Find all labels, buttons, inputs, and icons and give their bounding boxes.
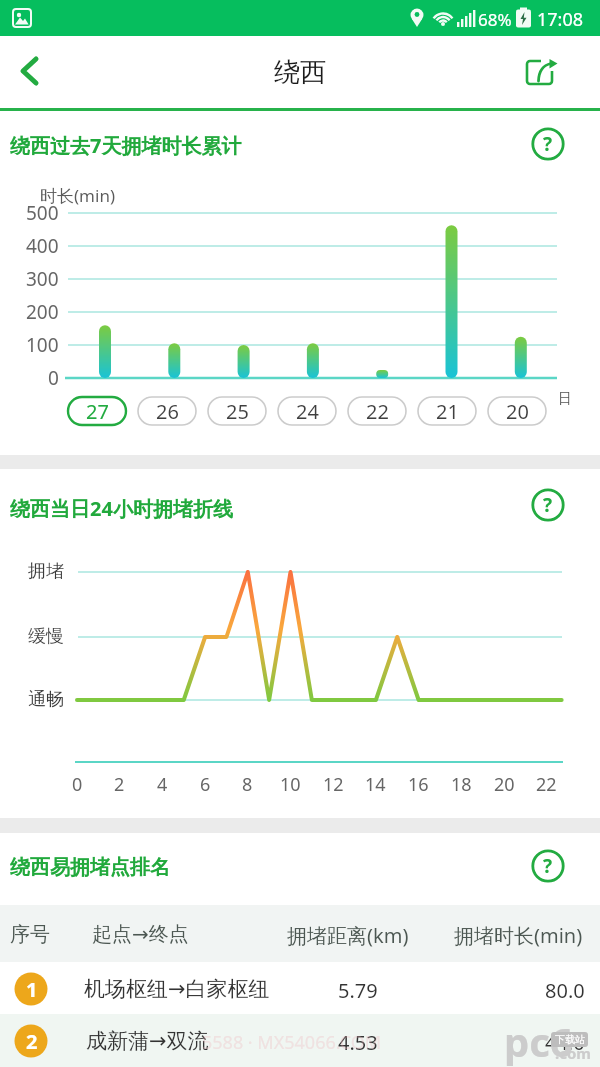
staticText: 时长(min) bbox=[40, 184, 115, 207]
staticText: 2 bbox=[114, 772, 125, 797]
staticText: 绕西过去7天拥堵时长累计 bbox=[10, 132, 242, 159]
button[interactable] bbox=[0, 962, 600, 1014]
staticText: 成新蒲→双流 bbox=[86, 1028, 209, 1054]
staticText: 14 bbox=[365, 772, 386, 797]
staticText: 16 bbox=[408, 772, 429, 797]
button[interactable]: ? bbox=[531, 488, 565, 522]
button[interactable]: 27 bbox=[68, 397, 126, 425]
staticText: 500 bbox=[26, 200, 59, 226]
staticText: 绕西当日24小时拥堵折线 bbox=[10, 495, 233, 522]
staticText: 序号 bbox=[10, 922, 50, 947]
staticText: 20 bbox=[494, 772, 515, 797]
button[interactable]: ? bbox=[531, 849, 565, 883]
button[interactable] bbox=[0, 1014, 600, 1067]
staticText: 18 bbox=[451, 772, 472, 797]
staticText: 绕西易拥堵点排名 bbox=[10, 855, 170, 880]
staticText: 68% bbox=[478, 8, 512, 31]
button[interactable]: 22 bbox=[348, 397, 406, 425]
staticText: ? bbox=[543, 853, 553, 879]
staticText: 300 bbox=[26, 266, 59, 292]
staticText: 21 bbox=[436, 398, 459, 425]
staticText: 拥堵时长(min) bbox=[454, 922, 583, 949]
staticText: 200 bbox=[26, 299, 59, 325]
button[interactable]: ? bbox=[531, 127, 565, 161]
staticText: 44.0 bbox=[545, 1029, 585, 1056]
button[interactable] bbox=[8, 49, 52, 93]
staticText: 8 bbox=[242, 772, 253, 797]
staticText: 绕西 bbox=[274, 56, 326, 89]
staticText: 下载站 bbox=[555, 1033, 585, 1046]
staticText: 80.0 bbox=[545, 977, 585, 1004]
staticText: 机场枢纽→白家枢纽 bbox=[84, 976, 270, 1002]
staticText: 12 bbox=[323, 772, 344, 797]
staticText: 25 bbox=[226, 398, 249, 425]
button[interactable]: 25 bbox=[208, 397, 266, 425]
staticText: 0 bbox=[48, 365, 59, 391]
staticText: 5.79 bbox=[338, 977, 378, 1004]
staticText: 4.53 bbox=[338, 1029, 378, 1056]
button[interactable] bbox=[518, 50, 564, 94]
button[interactable]: 24 bbox=[278, 397, 336, 425]
staticText: 24 bbox=[296, 398, 319, 425]
button[interactable]: 20 bbox=[488, 397, 546, 425]
staticText: 400 bbox=[26, 233, 59, 259]
staticText: ? bbox=[543, 131, 553, 157]
button[interactable]: 21 bbox=[418, 397, 476, 425]
staticText: 100 bbox=[26, 332, 59, 358]
staticText: 缓慢 bbox=[28, 625, 64, 648]
button[interactable]: 26 bbox=[138, 397, 196, 425]
staticText: 日 bbox=[558, 390, 572, 408]
staticText: 5588 · MX54066.COM bbox=[202, 1030, 382, 1055]
staticText: 1 bbox=[26, 976, 38, 1003]
staticText: 27 bbox=[86, 398, 109, 425]
staticText: 通畅 bbox=[28, 688, 64, 711]
staticText: 22 bbox=[366, 398, 389, 425]
staticText: 22 bbox=[536, 772, 557, 797]
staticText: 4 bbox=[157, 772, 168, 797]
staticText: 20 bbox=[506, 398, 529, 425]
staticText: 6 bbox=[200, 772, 211, 797]
staticText: 17:08 bbox=[537, 7, 584, 32]
staticText: 拥堵 bbox=[28, 560, 64, 583]
staticText: 26 bbox=[156, 398, 179, 425]
staticText: ? bbox=[543, 492, 553, 518]
staticText: 拥堵距离(km) bbox=[287, 922, 409, 949]
staticText: .com bbox=[555, 1043, 591, 1063]
staticText: 起点→终点 bbox=[92, 922, 189, 947]
staticText: 0 bbox=[72, 772, 83, 797]
staticText: 2 bbox=[26, 1028, 38, 1055]
staticText: 10 bbox=[280, 772, 301, 797]
staticText: pc6 bbox=[504, 1014, 573, 1067]
